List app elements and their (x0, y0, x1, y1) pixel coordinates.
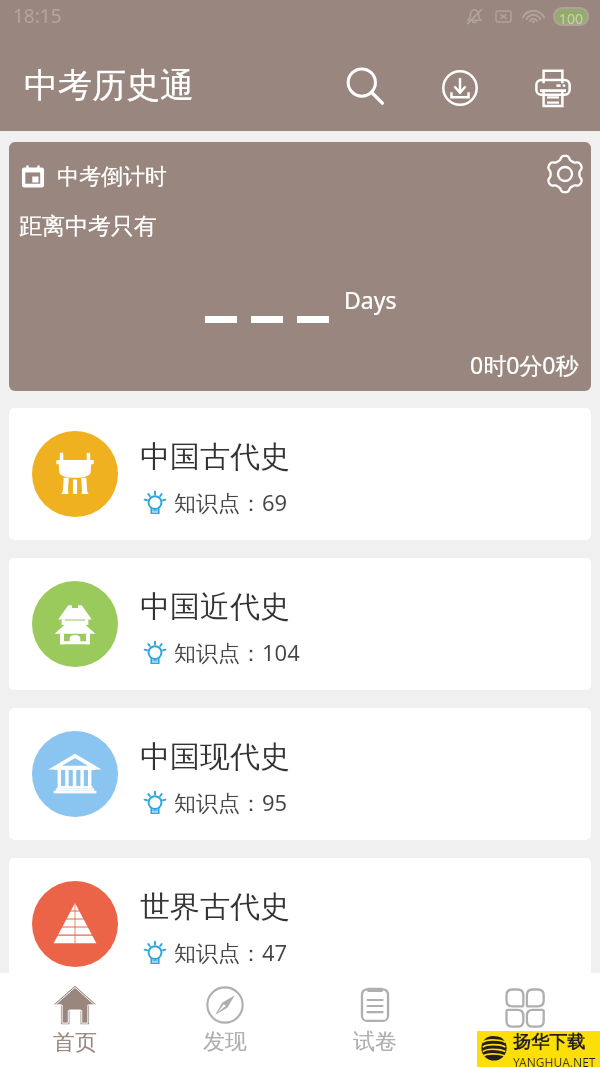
staticText: 中国近代史 (140, 588, 290, 626)
button[interactable]: 中考倒计时 (9, 142, 591, 391)
staticText: 18:15 (13, 3, 62, 29)
button[interactable]: Search (338, 60, 394, 116)
staticText: 扬华下载 (513, 1031, 585, 1054)
staticText: 0时0分0秒 (470, 349, 579, 380)
staticText: YANGHUA.NET (513, 1054, 596, 1067)
staticText: 中考倒计时 (57, 163, 167, 191)
button[interactable]: Download (432, 60, 488, 116)
staticText: 距离中考只有 (19, 212, 157, 241)
button[interactable]: 首页 (0, 973, 150, 1067)
staticText: 试卷 (353, 1028, 397, 1056)
button[interactable]: 中国古代史 (9, 408, 591, 540)
staticText: 知识点：95 (174, 787, 288, 817)
staticText: 首页 (53, 1029, 97, 1057)
button[interactable]: Settings (539, 148, 591, 200)
staticText: 中国现代史 (140, 738, 290, 776)
staticText: 中国古代史 (140, 438, 290, 476)
staticText: 知识点：104 (174, 637, 300, 667)
button[interactable]: More (450, 973, 600, 1067)
button[interactable]: 试卷 (300, 973, 450, 1067)
staticText: 中考历史通 (24, 64, 194, 107)
button[interactable]: 中国近代史 (9, 558, 591, 690)
staticText: 知识点：69 (174, 487, 288, 517)
staticText: 100 (559, 9, 584, 24)
staticText: 世界古代史 (140, 888, 290, 926)
staticText: 发现 (203, 1028, 247, 1056)
button[interactable]: 发现 (150, 973, 300, 1067)
button[interactable]: 世界古代史 (9, 858, 591, 990)
button[interactable]: Print (525, 60, 581, 116)
staticText: Days (344, 284, 397, 315)
button[interactable]: 中国现代史 (9, 708, 591, 840)
staticText: 知识点：47 (174, 937, 288, 967)
